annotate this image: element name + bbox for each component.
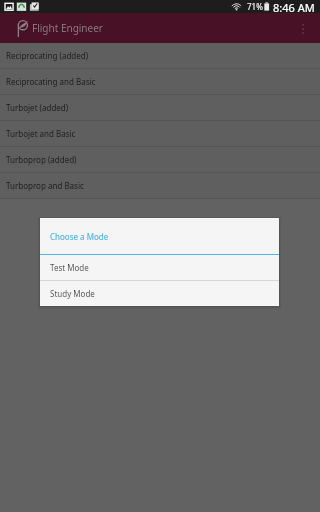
button[interactable]: Study Mode xyxy=(40,281,279,306)
button[interactable]: Reciprocating and Basic xyxy=(0,69,320,94)
button[interactable]: Test Mode xyxy=(40,255,279,280)
button[interactable]: Turboprop and Basic xyxy=(0,173,320,198)
staticText: Study Mode xyxy=(50,288,95,299)
staticText: Turboprop (added) xyxy=(6,154,77,165)
button[interactable]: Turbojet (added) xyxy=(0,95,320,120)
staticText: Test Mode xyxy=(50,262,89,273)
staticText: 71% xyxy=(247,1,263,12)
button[interactable]: Turbojet and Basic xyxy=(0,121,320,146)
staticText: Reciprocating and Basic xyxy=(6,76,96,87)
staticText: Turboprop and Basic xyxy=(6,180,84,191)
staticText: Turbojet (added) xyxy=(6,102,69,113)
staticText: Flight Engineer xyxy=(32,21,103,35)
staticText: Turbojet and Basic xyxy=(6,128,76,139)
button[interactable]: More options xyxy=(302,24,304,34)
button[interactable]: Reciprocating (added) xyxy=(0,43,320,68)
button[interactable]: Turboprop (added) xyxy=(0,147,320,172)
staticText: Choose a Mode xyxy=(50,231,109,242)
staticText: 8:46 AM xyxy=(273,0,315,13)
staticText: Reciprocating (added) xyxy=(6,50,89,61)
